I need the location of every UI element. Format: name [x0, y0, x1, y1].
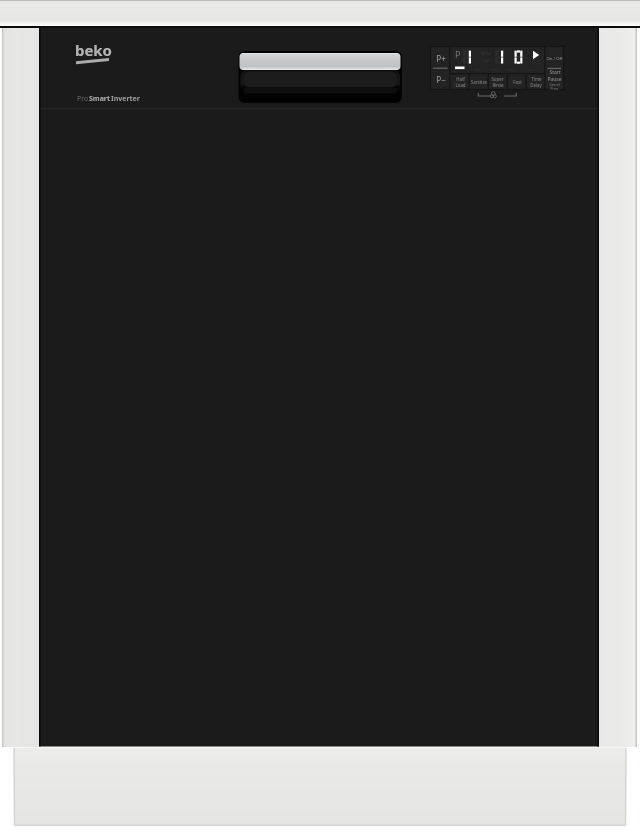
- staticText: Load: [455, 82, 466, 88]
- staticText: P: [455, 48, 461, 60]
- button[interactable]: Programme display, P1, 1 hour 10 minutes…: [450, 47, 544, 73]
- button[interactable]: Time: [526, 74, 545, 90]
- staticText: Pause: [547, 76, 562, 83]
- staticText: Rinse: [492, 82, 504, 88]
- button[interactable]: On / Off: [545, 47, 564, 69]
- button[interactable]: Super: [488, 74, 507, 90]
- staticText: Sanitize: [471, 79, 487, 85]
- staticText: Super: [491, 76, 504, 82]
- staticText: Cancel Prog.: [545, 83, 564, 90]
- button[interactable]: Start: [545, 69, 564, 90]
- staticText: On / Off: [546, 55, 563, 61]
- button[interactable]: P−: [431, 69, 450, 90]
- staticText: P+: [436, 53, 446, 64]
- staticText: Start: [549, 69, 561, 76]
- button[interactable]: P+: [431, 47, 450, 69]
- button[interactable]: Half: [450, 74, 470, 90]
- staticText: Time: [531, 76, 542, 82]
- button[interactable]: Sanitize: [469, 74, 488, 90]
- staticText: Fast: [513, 79, 522, 85]
- staticText: Delay: [530, 82, 542, 88]
- button[interactable]: Open door handle: [238, 51, 402, 103]
- staticText: Pro: [77, 94, 89, 104]
- button[interactable]: Fast: [508, 74, 527, 90]
- staticText: P−: [436, 74, 446, 85]
- staticText: Smart: [89, 94, 111, 104]
- staticText: Half: [456, 76, 465, 82]
- staticText: beko: [75, 40, 112, 60]
- staticText: Inverter: [111, 94, 140, 104]
